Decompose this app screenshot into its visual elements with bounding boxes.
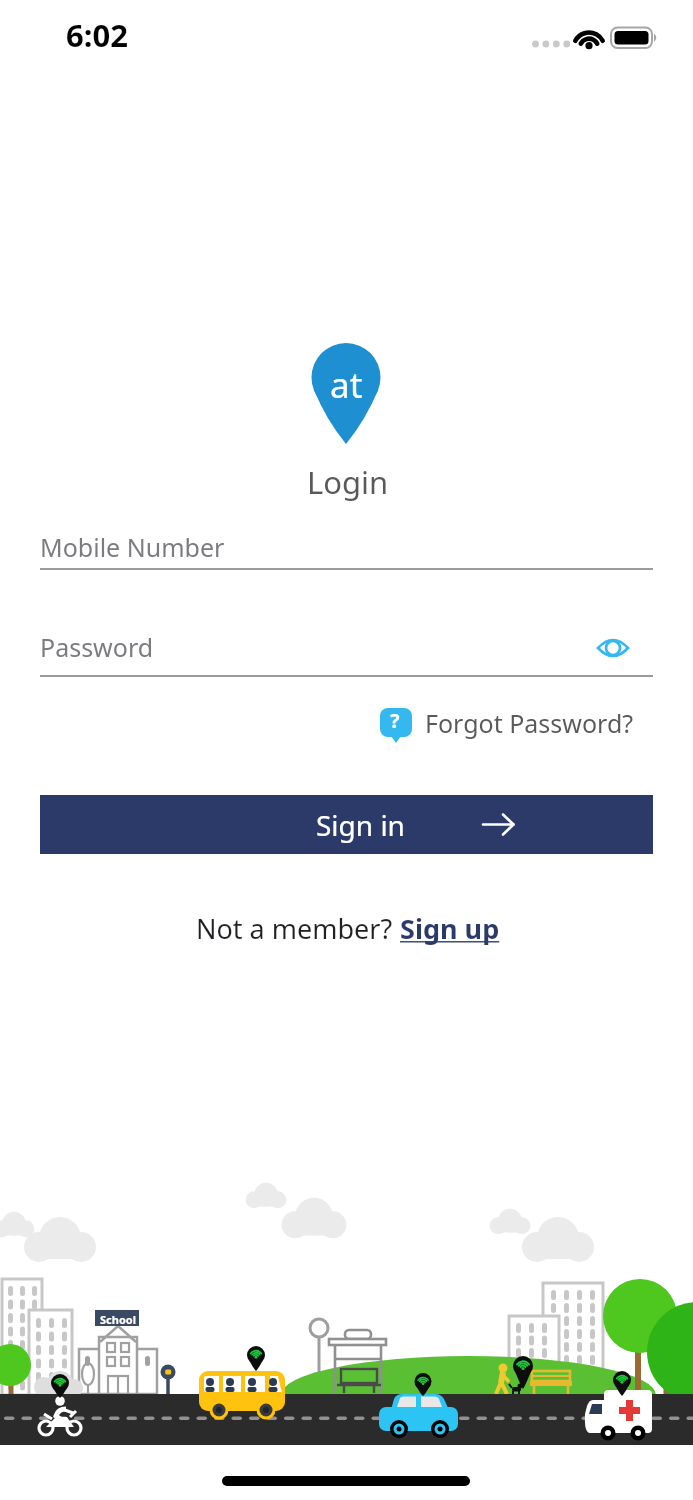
- staticText: Mobile Number: [40, 530, 225, 564]
- button[interactable]: Sign in: [40, 795, 653, 854]
- button[interactable]: Mobile Number: [40, 522, 653, 572]
- button[interactable]: [596, 633, 630, 663]
- button[interactable]: Password: [40, 622, 653, 672]
- staticText: Sign up: [400, 910, 500, 947]
- staticText: ?: [390, 707, 400, 734]
- staticText: Not a member?: [196, 910, 400, 947]
- staticText: 6:02: [66, 14, 128, 56]
- staticText: Login: [307, 461, 389, 503]
- button[interactable]: ?: [378, 703, 634, 743]
- staticText: Password: [40, 630, 154, 664]
- button[interactable]: Not a member?: [196, 910, 500, 947]
- staticText: School: [100, 1312, 136, 1327]
- staticText: Forgot Password?: [425, 706, 634, 740]
- staticText: Sign in: [316, 806, 405, 844]
- staticText: at: [330, 361, 363, 409]
